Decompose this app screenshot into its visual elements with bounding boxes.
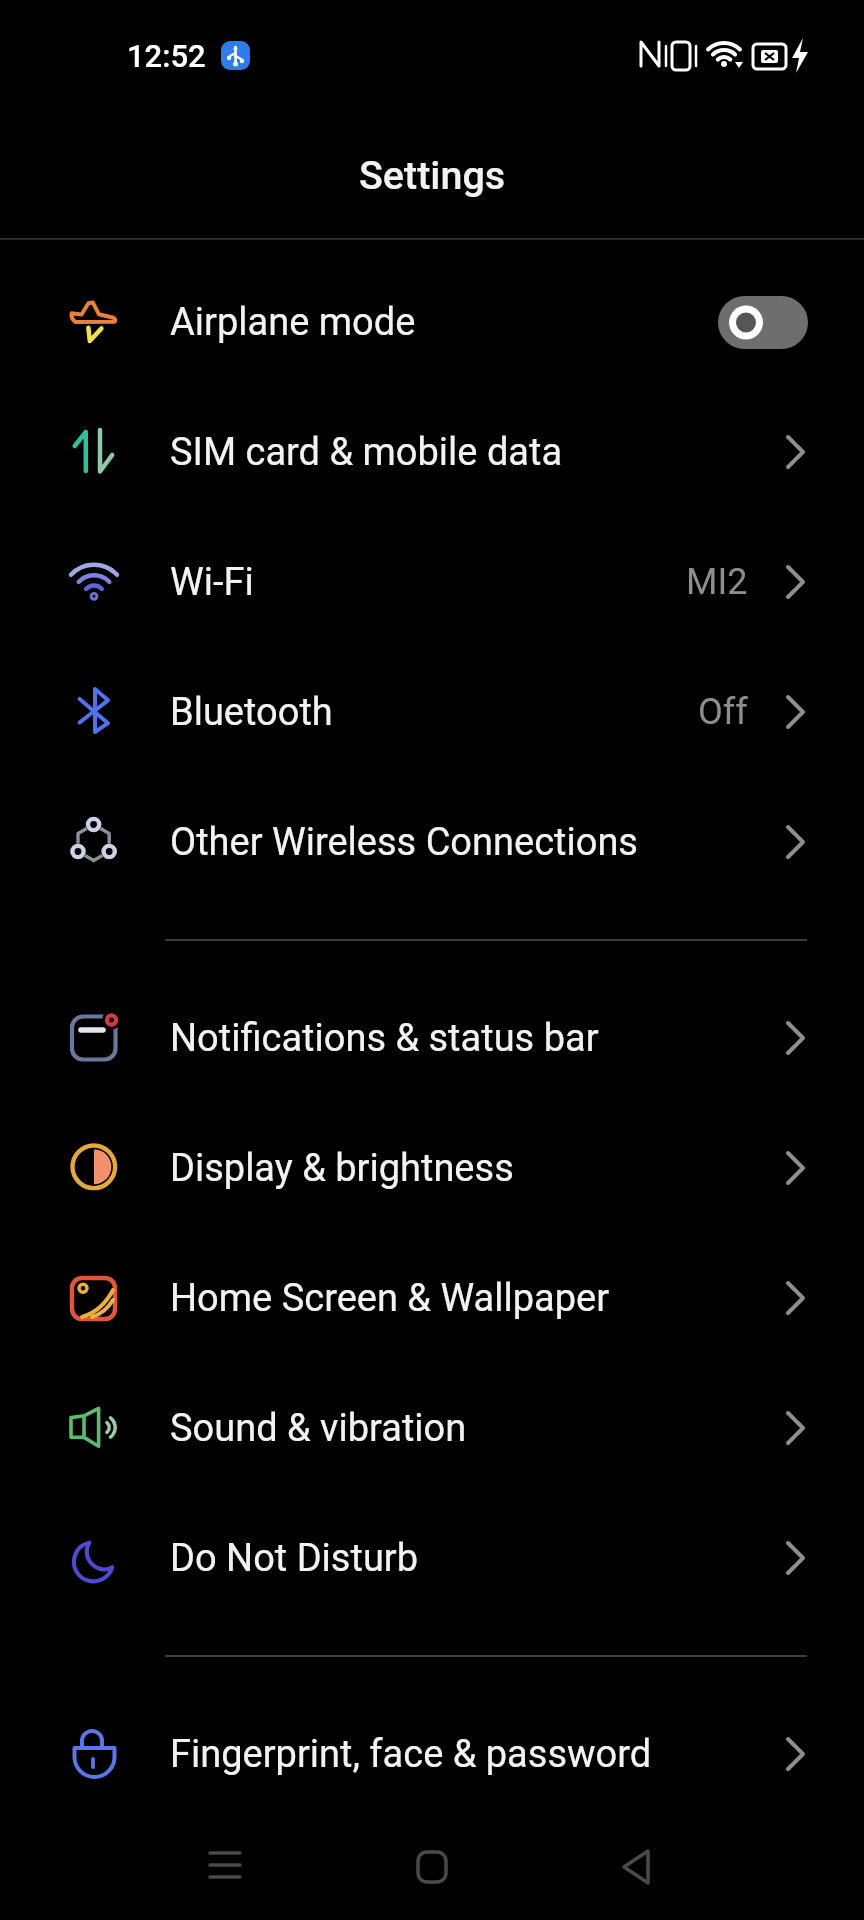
button[interactable] <box>602 1831 674 1903</box>
button[interactable]: Airplane mode <box>0 257 864 387</box>
staticText: Wi-Fi <box>170 560 254 605</box>
staticText: Settings <box>359 152 506 198</box>
staticText: Other Wireless Connections <box>170 820 638 865</box>
button[interactable]: Do Not Disturb <box>0 1493 864 1623</box>
staticText: Display & brightness <box>170 1146 514 1191</box>
button[interactable] <box>189 1831 261 1903</box>
button[interactable]: Bluetooth <box>0 647 864 777</box>
button[interactable]: SIM card & mobile data <box>0 387 864 517</box>
button[interactable]: Display & brightness <box>0 1103 864 1233</box>
staticText: Sound & vibration <box>170 1406 467 1451</box>
button[interactable]: Home Screen & Wallpaper <box>0 1233 864 1363</box>
button[interactable]: Other Wireless Connections <box>0 777 864 907</box>
staticText: Bluetooth <box>170 690 333 735</box>
staticText: Fingerprint, face & password <box>170 1732 652 1777</box>
button[interactable]: Notifications & status bar <box>0 973 864 1103</box>
button[interactable]: Wi-Fi <box>0 517 864 647</box>
staticText: Off <box>698 691 748 733</box>
button[interactable]: Sound & vibration <box>0 1363 864 1493</box>
staticText: Notifications & status bar <box>170 1016 599 1061</box>
staticText: MI2 <box>686 561 748 603</box>
button[interactable]: Fingerprint, face & password <box>0 1689 864 1819</box>
staticText: SIM card & mobile data <box>170 430 563 475</box>
staticText: Do Not Disturb <box>170 1536 419 1581</box>
button[interactable] <box>718 296 808 349</box>
button[interactable] <box>396 1831 468 1903</box>
staticText: Home Screen & Wallpaper <box>170 1276 610 1321</box>
staticText: 12:52 <box>127 38 206 74</box>
staticText: Airplane mode <box>170 300 416 345</box>
